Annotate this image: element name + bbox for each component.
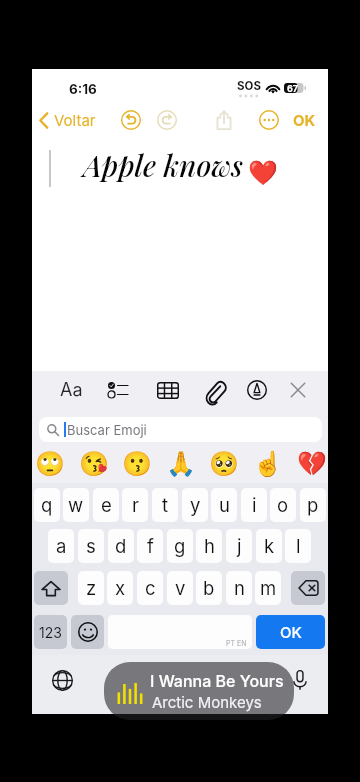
staticText: y: [190, 494, 201, 516]
button[interactable]: x: [107, 571, 133, 605]
staticText: 🙏: [166, 450, 196, 478]
staticText: n: [234, 577, 245, 599]
staticText: l: [296, 535, 301, 557]
staticText: 😘: [79, 450, 109, 478]
staticText: s: [86, 535, 96, 557]
staticText: I Wanna Be Yours: [150, 671, 284, 690]
staticText: w: [68, 494, 84, 516]
staticText: PT EN: [226, 639, 247, 647]
staticText: 🙄: [35, 450, 65, 478]
button[interactable]: d: [108, 529, 134, 563]
button[interactable]: Attach file: [193, 372, 235, 408]
staticText: Voltar: [54, 111, 96, 129]
button[interactable]: Close: [277, 372, 319, 408]
staticText: b: [203, 577, 215, 599]
staticText: Aa: [60, 379, 83, 401]
button[interactable]: v: [167, 571, 193, 605]
staticText: ☝️: [253, 450, 283, 478]
button[interactable]: Space: [108, 615, 252, 649]
staticText: 67: [287, 83, 299, 94]
staticText: Apple knows: [83, 145, 243, 184]
button[interactable]: Dictation: [284, 664, 316, 696]
staticText: 123: [39, 624, 62, 641]
button[interactable]: u: [211, 488, 237, 522]
button[interactable]: e: [93, 488, 119, 522]
button[interactable]: OK: [256, 615, 325, 649]
staticText: j: [237, 535, 242, 557]
button[interactable]: y: [182, 488, 208, 522]
button[interactable]: Buscar Emoji: [39, 417, 322, 442]
button[interactable]: I Wanna Be Yours: [104, 662, 294, 720]
button[interactable]: Shift: [34, 571, 68, 605]
staticText: q: [41, 494, 53, 516]
button[interactable]: f: [137, 529, 163, 563]
staticText: Buscar Emoji: [67, 422, 147, 438]
button[interactable]: Change keyboard: [46, 664, 78, 696]
button[interactable]: ☝️: [247, 447, 289, 481]
button[interactable]: n: [226, 571, 252, 605]
staticText: g: [174, 535, 186, 557]
staticText: e: [101, 494, 112, 516]
staticText: p: [307, 494, 319, 516]
staticText: OK: [293, 111, 316, 129]
staticText: f: [147, 535, 154, 557]
staticText: a: [56, 535, 67, 557]
button[interactable]: 💔: [291, 447, 333, 481]
staticText: ❤️: [248, 159, 278, 187]
button[interactable]: b: [196, 571, 222, 605]
button[interactable]: More options: [250, 101, 288, 139]
button[interactable]: j: [226, 529, 252, 563]
button[interactable]: 🙄: [29, 447, 71, 481]
staticText: t: [162, 494, 169, 516]
button[interactable]: z: [78, 571, 104, 605]
button[interactable]: 😘: [73, 447, 115, 481]
staticText: c: [145, 577, 156, 599]
button[interactable]: Table: [147, 372, 189, 408]
staticText: u: [219, 494, 230, 516]
button[interactable]: c: [137, 571, 163, 605]
staticText: h: [204, 535, 215, 557]
button[interactable]: 🙏: [160, 447, 202, 481]
button[interactable]: h: [196, 529, 222, 563]
button[interactable]: Text format: [50, 372, 92, 408]
button[interactable]: s: [78, 529, 104, 563]
staticText: o: [277, 494, 289, 516]
button[interactable]: 😗: [116, 447, 158, 481]
button[interactable]: OK: [288, 101, 320, 139]
button[interactable]: Checklist: [97, 372, 139, 408]
staticText: k: [264, 535, 275, 557]
button[interactable]: Undo: [112, 101, 150, 139]
staticText: 😗: [122, 450, 152, 478]
button[interactable]: Voltar: [35, 101, 100, 139]
button[interactable]: w: [63, 488, 89, 522]
staticText: d: [115, 535, 127, 557]
button[interactable]: q: [34, 488, 60, 522]
staticText: 🥺: [209, 450, 239, 478]
button[interactable]: Markup: [236, 372, 278, 408]
button[interactable]: Emoji keyboard: [71, 615, 104, 649]
staticText: OK: [280, 623, 302, 641]
staticText: x: [115, 577, 126, 599]
staticText: r: [132, 494, 139, 516]
button[interactable]: t: [152, 488, 178, 522]
button[interactable]: g: [167, 529, 193, 563]
staticText: i: [252, 494, 257, 516]
button[interactable]: Backspace: [291, 571, 325, 605]
button[interactable]: i: [241, 488, 267, 522]
button[interactable]: r: [122, 488, 148, 522]
button[interactable]: Share: [205, 101, 243, 139]
staticText: m: [260, 577, 277, 599]
button[interactable]: k: [256, 529, 282, 563]
button[interactable]: l: [285, 529, 311, 563]
button[interactable]: p: [300, 488, 326, 522]
staticText: 6:16: [69, 81, 97, 97]
button[interactable]: 123: [34, 615, 67, 649]
button[interactable]: o: [270, 488, 296, 522]
button[interactable]: 🥺: [203, 447, 245, 481]
staticText: v: [175, 577, 186, 599]
button[interactable]: a: [48, 529, 74, 563]
button[interactable]: m: [255, 571, 281, 605]
staticText: SOS: [237, 79, 261, 93]
staticText: Arctic Monkeys: [152, 693, 262, 711]
button[interactable]: Redo: [148, 101, 186, 139]
